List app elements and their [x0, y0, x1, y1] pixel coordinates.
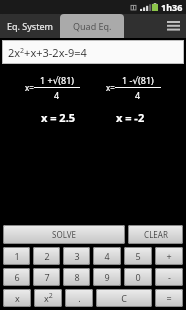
staticText: 9 [104, 271, 110, 283]
staticText: 1 +√(81) [40, 74, 75, 86]
button[interactable]: x [3, 289, 31, 307]
staticText: - [168, 271, 171, 283]
staticText: C [121, 292, 127, 304]
staticText: x = 2.5 [41, 110, 76, 125]
staticText: 4 [135, 89, 141, 101]
button[interactable]: 8 [63, 268, 90, 286]
staticText: 1 -√(81) [122, 74, 154, 86]
button[interactable]: 9 [93, 268, 121, 286]
staticText: + [166, 250, 172, 262]
staticText: 1h36 [161, 1, 183, 13]
staticText: CLEAR [144, 229, 168, 240]
button[interactable]: 0 [124, 268, 152, 286]
button[interactable]: Eq. System [0, 14, 60, 38]
staticText: x= [25, 82, 34, 93]
staticText: SOLVE [52, 229, 76, 240]
staticText: 4 [54, 89, 60, 101]
button[interactable]: 4 [93, 247, 121, 265]
button[interactable]: Menu [160, 14, 186, 38]
button[interactable]: x2 [34, 289, 62, 307]
staticText: . [78, 292, 81, 304]
button[interactable]: - [155, 268, 183, 286]
staticText: 4 [104, 250, 110, 262]
staticText: 8 [74, 271, 80, 283]
button[interactable]: CLEAR [128, 225, 183, 244]
staticText: Quad Eq. [73, 20, 112, 32]
button[interactable]: 2x2+x+3-2x-9=4 [2, 40, 184, 64]
staticText: 3 [74, 250, 80, 262]
button[interactable]: 7 [33, 268, 60, 286]
staticText: 1 [14, 250, 20, 262]
staticText: x [15, 292, 20, 304]
button[interactable]: 3 [63, 247, 90, 265]
button[interactable]: = [155, 289, 183, 307]
staticText: x2 [44, 291, 53, 305]
staticText: x= [106, 82, 115, 93]
staticText: 0 [135, 271, 141, 283]
button[interactable]: SOLVE [3, 225, 125, 244]
button[interactable]: Quad Eq. [60, 14, 124, 38]
staticText: 7 [44, 271, 50, 283]
staticText: = [166, 292, 172, 304]
button[interactable]: 2 [33, 247, 60, 265]
staticText: 2x2+x+3-2x-9=4 [8, 45, 87, 60]
staticText: 6 [14, 271, 20, 283]
staticText: 5 [135, 250, 141, 262]
button[interactable]: 1 [3, 247, 30, 265]
staticText: Eq. System [7, 20, 53, 32]
button[interactable]: 6 [3, 268, 30, 286]
staticText: x = -2 [116, 110, 145, 125]
button[interactable]: 5 [124, 247, 152, 265]
button[interactable]: . [65, 289, 93, 307]
button[interactable]: C [96, 289, 152, 307]
staticText: 2 [44, 250, 50, 262]
button[interactable]: + [155, 247, 183, 265]
